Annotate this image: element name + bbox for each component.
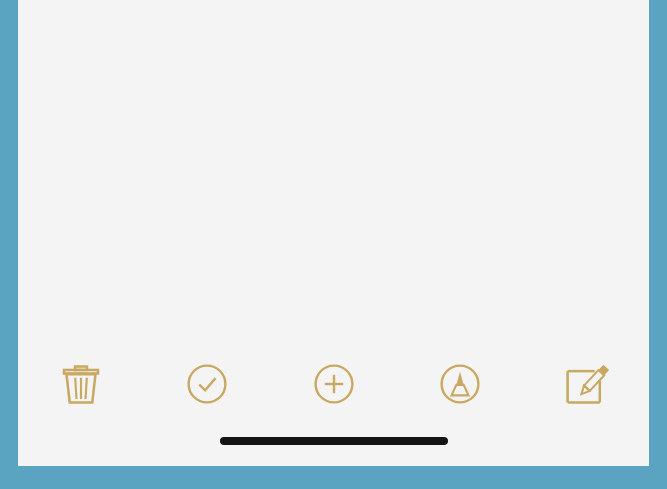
button[interactable]: Compose: [554, 352, 618, 416]
button[interactable]: Brush: [428, 352, 492, 416]
button[interactable]: Add: [302, 352, 366, 416]
button[interactable]: Done: [175, 352, 239, 416]
button[interactable]: Delete: [49, 352, 113, 416]
